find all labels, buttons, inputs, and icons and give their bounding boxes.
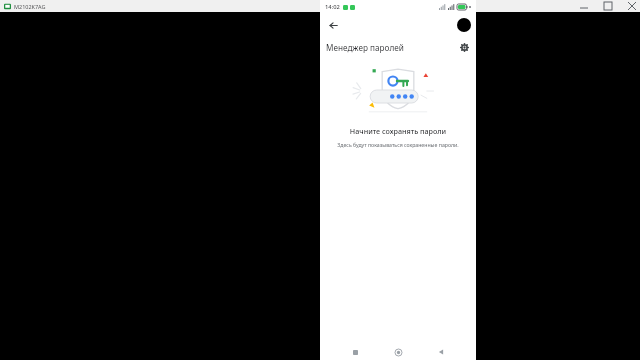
staticText: Начните сохранять пароли xyxy=(320,126,476,136)
button[interactable]: Назад xyxy=(325,17,341,33)
staticText: Менеджер паролей xyxy=(326,42,404,53)
button[interactable]: Обзор xyxy=(347,344,363,360)
staticText: M2102K7AG xyxy=(14,3,46,10)
button[interactable]: Аккаунт xyxy=(457,18,471,32)
button[interactable]: Главный экран xyxy=(390,344,406,360)
staticText: 14:02 xyxy=(325,3,340,11)
staticText: Здесь будут показываться сохраненные пар… xyxy=(334,141,462,148)
button[interactable]: Назад xyxy=(433,344,449,360)
button[interactable]: Настройки xyxy=(456,39,472,55)
